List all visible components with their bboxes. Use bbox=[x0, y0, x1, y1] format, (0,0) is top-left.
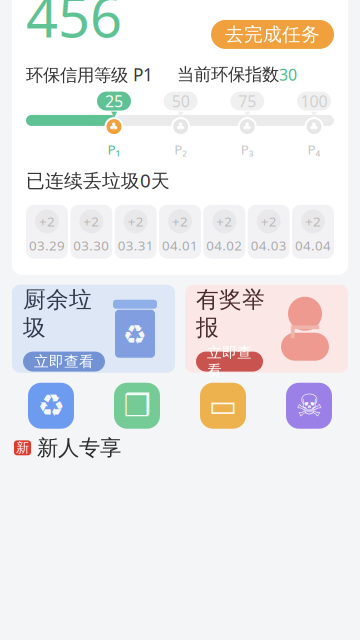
staticText: 新 bbox=[16, 440, 29, 456]
staticText: ▾ bbox=[244, 107, 250, 120]
button[interactable]: 有奖举报 bbox=[185, 285, 348, 373]
staticText: ♻ bbox=[123, 320, 147, 350]
staticText: ⌐ bbox=[286, 303, 324, 354]
staticText: 立即查看 bbox=[34, 353, 94, 371]
staticText: P₂ bbox=[174, 141, 187, 158]
staticText: 03.30 bbox=[73, 236, 109, 254]
button[interactable]: Quick action bbox=[200, 383, 246, 429]
button[interactable]: Quick action bbox=[28, 383, 74, 429]
staticText: ▾ bbox=[178, 107, 184, 120]
staticText: ▾ bbox=[111, 107, 117, 120]
staticText: +2 bbox=[261, 212, 277, 230]
staticText: +2 bbox=[128, 212, 144, 230]
staticText: 新人专享 bbox=[37, 435, 121, 461]
button[interactable]: 去完成任务 bbox=[211, 20, 334, 49]
staticText: 已连续丢垃圾0天 bbox=[26, 168, 170, 193]
staticText: ♣ bbox=[109, 120, 119, 133]
staticText: 03.31 bbox=[118, 236, 154, 254]
staticText: P₁ bbox=[107, 141, 120, 158]
staticText: +2 bbox=[172, 212, 188, 230]
staticText: ▭ bbox=[208, 388, 237, 423]
staticText: 04.04 bbox=[295, 236, 331, 254]
button[interactable]: 厨余垃圾 bbox=[12, 285, 175, 373]
staticText: P₄ bbox=[307, 141, 320, 158]
staticText: ♣ bbox=[176, 120, 186, 133]
button[interactable]: Quick action bbox=[114, 383, 160, 429]
staticText: 50 bbox=[172, 90, 190, 112]
staticText: P₃ bbox=[241, 141, 254, 158]
staticText: 立即查看 bbox=[207, 344, 252, 380]
staticText: +2 bbox=[305, 212, 321, 230]
staticText: ♣ bbox=[242, 120, 252, 133]
staticText: ☠ bbox=[295, 388, 322, 423]
staticText: 当前环保指数 bbox=[177, 64, 279, 85]
staticText: 04.01 bbox=[162, 236, 198, 254]
staticText: ▾ bbox=[311, 107, 317, 120]
staticText: 100 bbox=[300, 90, 327, 112]
staticText: 厨余垃圾 bbox=[23, 286, 92, 342]
staticText: 03.29 bbox=[29, 236, 65, 254]
staticText: ♣ bbox=[309, 120, 319, 133]
staticText: +2 bbox=[83, 212, 99, 230]
staticText: 环保信用等级 P1 bbox=[26, 63, 153, 86]
staticText: 04.02 bbox=[206, 236, 242, 254]
staticText: 04.03 bbox=[251, 236, 287, 254]
staticText: ♻ bbox=[37, 388, 64, 423]
staticText: 有奖举报 bbox=[196, 286, 265, 342]
staticText: 456 bbox=[26, 0, 122, 53]
staticText: +2 bbox=[216, 212, 232, 230]
staticText: 去完成任务 bbox=[225, 23, 320, 46]
staticText: 25 bbox=[105, 90, 123, 112]
staticText: 30 bbox=[279, 64, 297, 85]
button[interactable]: Quick action bbox=[286, 383, 332, 429]
staticText: +2 bbox=[39, 212, 55, 230]
staticText: 75 bbox=[238, 90, 256, 112]
staticText: ❒ bbox=[123, 388, 150, 423]
